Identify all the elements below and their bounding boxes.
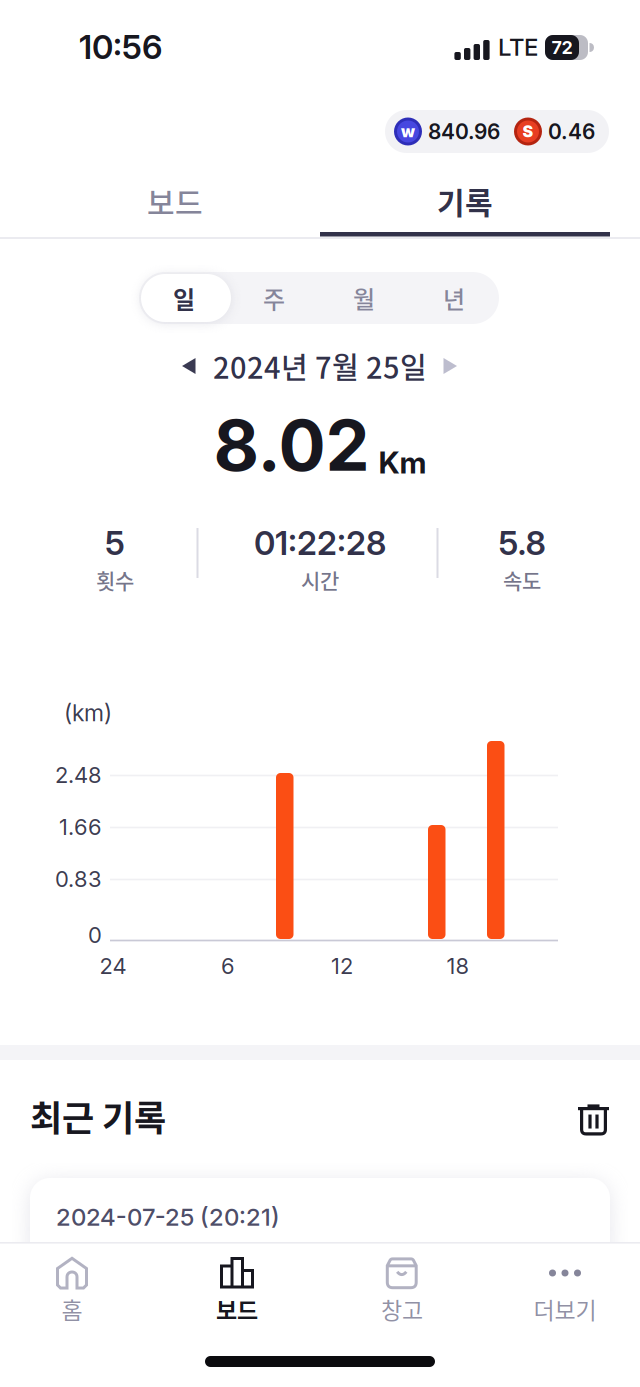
button[interactable]: Home bbox=[7, 1256, 137, 1322]
staticText: (km) bbox=[64, 699, 112, 727]
staticText: 홈 bbox=[61, 1292, 82, 1326]
button[interactable]: More bbox=[500, 1256, 630, 1322]
staticText: 최근 기록 bbox=[30, 1091, 166, 1141]
button[interactable]: Next day bbox=[431, 346, 469, 386]
staticText: 0 bbox=[88, 922, 102, 948]
staticText: 24 bbox=[99, 953, 126, 979]
staticText: 5 bbox=[105, 523, 125, 563]
button[interactable]: 년 bbox=[409, 272, 499, 324]
staticText: 8.02 bbox=[213, 403, 369, 488]
staticText: 1.66 bbox=[59, 814, 102, 840]
button[interactable]: Storage bbox=[337, 1256, 467, 1322]
staticText: 보드 bbox=[216, 1292, 258, 1326]
staticText: 72 bbox=[551, 37, 572, 58]
staticText: 6 bbox=[221, 953, 235, 979]
staticText: 5.8 bbox=[498, 523, 545, 563]
staticText: 년 bbox=[443, 281, 465, 315]
staticText: 0.46 bbox=[548, 119, 595, 144]
staticText: 0.83 bbox=[55, 866, 102, 892]
staticText: 속도 bbox=[503, 564, 541, 595]
staticText: S bbox=[522, 122, 533, 141]
button[interactable]: 주 bbox=[229, 272, 319, 324]
staticText: 10:56 bbox=[79, 27, 162, 67]
staticText: 2024-07-25 (20:21) bbox=[56, 1202, 280, 1231]
staticText: 보드 bbox=[147, 179, 203, 223]
button[interactable]: 보드 bbox=[30, 173, 320, 229]
staticText: w bbox=[401, 122, 415, 141]
staticText: 시간 bbox=[301, 564, 339, 595]
button[interactable]: 2024-07-25 (20:21) bbox=[30, 1178, 610, 1274]
staticText: 주 bbox=[263, 281, 285, 315]
button[interactable]: 일 bbox=[139, 272, 229, 324]
staticText: Km bbox=[378, 444, 426, 481]
button[interactable]: Previous day bbox=[170, 346, 208, 386]
button[interactable]: 월 bbox=[319, 272, 409, 324]
staticText: 840.96 bbox=[428, 119, 500, 144]
staticText: 월 bbox=[353, 281, 375, 315]
staticText: 18 bbox=[446, 953, 469, 979]
staticText: 더보기 bbox=[533, 1292, 596, 1326]
button[interactable]: 기록 bbox=[320, 173, 610, 229]
staticText: 기록 bbox=[437, 179, 493, 223]
staticText: 12 bbox=[331, 953, 353, 979]
staticText: 일 bbox=[173, 281, 195, 315]
staticText: 2.48 bbox=[55, 762, 102, 788]
staticText: LTE bbox=[498, 32, 538, 61]
button[interactable]: Wallet balances bbox=[385, 110, 609, 153]
button[interactable]: Board bbox=[172, 1256, 302, 1322]
staticText: 2024년 7월 25일 bbox=[213, 345, 427, 387]
staticText: 01:22:28 bbox=[254, 523, 386, 563]
button[interactable]: Delete records bbox=[572, 1096, 615, 1142]
staticText: 창고 bbox=[381, 1292, 423, 1326]
staticText: 횟수 bbox=[96, 564, 134, 595]
